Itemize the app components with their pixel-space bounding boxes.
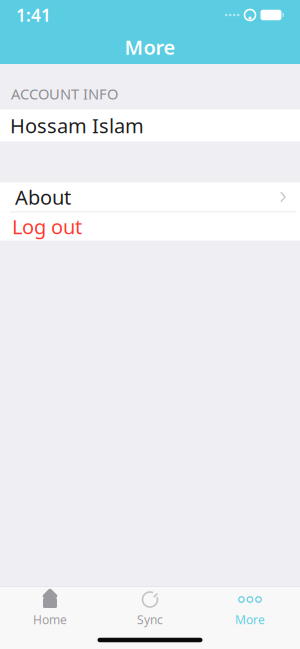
staticText: More [235, 611, 265, 627]
button[interactable]: Hossam Islam [0, 109, 300, 141]
button[interactable]: More [200, 587, 300, 631]
button[interactable]: About [0, 182, 300, 212]
button[interactable]: Home [0, 587, 100, 631]
staticText: About [15, 184, 71, 210]
button[interactable]: Sync [100, 587, 200, 631]
staticText: Hossam Islam [10, 112, 144, 139]
staticText: 1:41 [16, 3, 51, 26]
staticText: ACCOUNT INFO [11, 84, 118, 103]
staticText: Home [33, 611, 67, 627]
staticText: More [124, 34, 175, 60]
button[interactable]: Log out [0, 212, 300, 240]
staticText: Sync [137, 611, 163, 627]
staticText: Log out [12, 213, 82, 240]
